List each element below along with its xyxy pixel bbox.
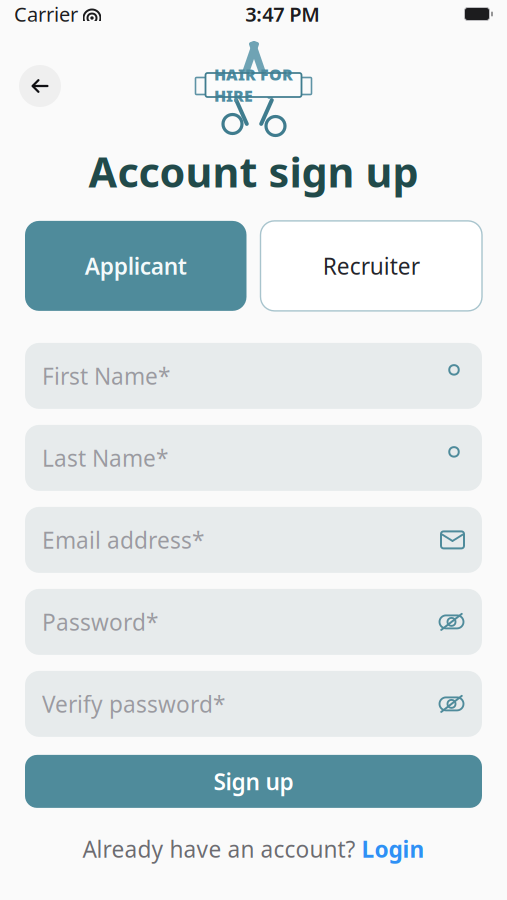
staticText: 3:47 PM xyxy=(245,1,320,27)
staticText: Password* xyxy=(42,607,158,637)
staticText: Recruiter xyxy=(323,251,420,281)
button[interactable]: Sign up xyxy=(25,755,482,808)
staticText: Account sign up xyxy=(88,144,418,199)
staticText: HAIR FOR HIRE xyxy=(214,64,293,106)
staticText: Email address* xyxy=(42,525,204,555)
staticText: Already have an account? xyxy=(82,834,355,864)
button[interactable]: Already have an account? xyxy=(0,826,507,872)
button[interactable]: Recruiter xyxy=(260,221,482,311)
staticText: First Name* xyxy=(42,361,170,391)
button[interactable]: Applicant xyxy=(25,221,246,311)
staticText: Login xyxy=(361,834,424,864)
staticText: Applicant xyxy=(85,251,187,281)
staticText: Verify password* xyxy=(42,689,225,719)
staticText: Sign up xyxy=(213,766,293,796)
staticText: Last Name* xyxy=(42,443,168,473)
staticText: Carrier xyxy=(14,1,78,27)
button[interactable]: Back xyxy=(19,65,61,107)
